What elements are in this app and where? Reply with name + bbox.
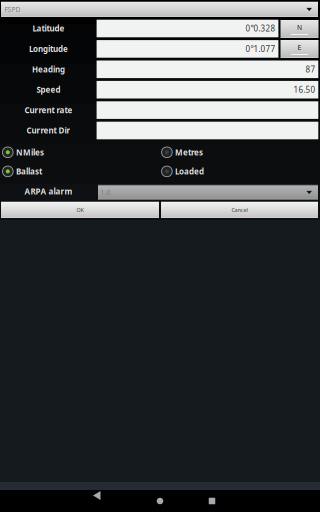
button[interactable]: Cancel bbox=[161, 201, 318, 218]
staticText: Metres bbox=[175, 147, 203, 158]
button[interactable]: Home bbox=[145, 491, 175, 511]
staticText: NMiles bbox=[16, 147, 44, 158]
staticText: Heading bbox=[32, 64, 65, 75]
staticText: Speed bbox=[36, 84, 60, 95]
button[interactable]: Recents bbox=[197, 491, 227, 511]
staticText: FSPD bbox=[5, 5, 21, 14]
button[interactable]: OK bbox=[1, 201, 159, 218]
button[interactable]: 1.0 bbox=[98, 184, 318, 199]
button[interactable]: Ballast bbox=[2, 163, 62, 180]
staticText: 0°1.077 bbox=[246, 44, 276, 54]
staticText: N bbox=[297, 23, 302, 32]
staticText: Latitude bbox=[32, 23, 64, 34]
button[interactable]: Back bbox=[93, 491, 123, 511]
staticText: Longitude bbox=[29, 44, 68, 54]
staticText: Current rate bbox=[24, 105, 72, 115]
staticText: Ballast bbox=[16, 166, 42, 177]
button[interactable]: E bbox=[280, 40, 318, 58]
staticText: ARPA alarm bbox=[24, 186, 72, 197]
staticText: 1.0 bbox=[100, 188, 110, 197]
staticText: OK bbox=[76, 206, 83, 214]
staticText: 87 bbox=[305, 64, 315, 75]
button[interactable]: N bbox=[280, 20, 318, 38]
staticText: Current Dir bbox=[26, 125, 70, 136]
staticText: 16.50 bbox=[293, 84, 315, 95]
staticText: 0°0.328 bbox=[246, 23, 276, 34]
button[interactable]: NMiles bbox=[2, 144, 62, 161]
button[interactable]: FSPD bbox=[1, 1, 318, 17]
button[interactable]: Loaded bbox=[161, 163, 221, 180]
button[interactable]: Metres bbox=[161, 144, 221, 161]
staticText: Loaded bbox=[175, 166, 204, 177]
staticText: E bbox=[297, 43, 301, 52]
staticText: Cancel bbox=[231, 206, 247, 214]
